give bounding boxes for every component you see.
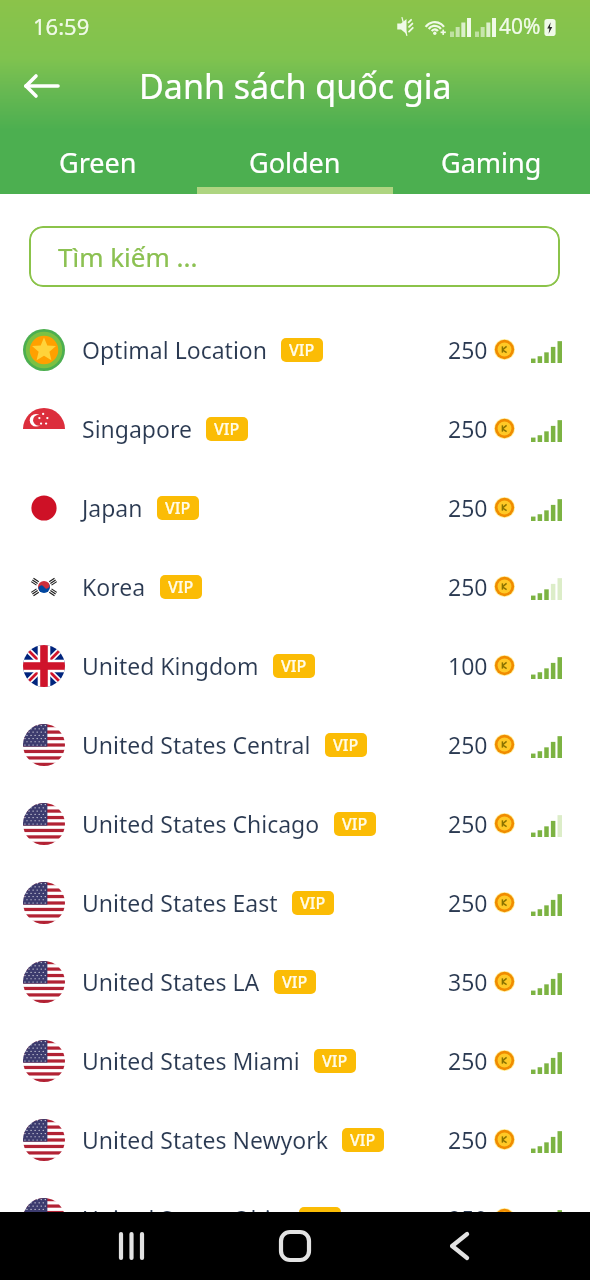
button[interactable]: Korea: [0, 547, 590, 626]
staticText: 250: [448, 1045, 488, 1076]
staticText: VIP: [282, 971, 308, 993]
staticText: 250: [448, 808, 488, 839]
staticText: Optimal Location: [82, 334, 267, 365]
staticText: Danh sách quốc gia: [139, 63, 452, 109]
staticText: 250: [448, 334, 488, 365]
staticText: VIP: [165, 497, 191, 519]
button[interactable]: United States East: [0, 863, 590, 942]
button[interactable]: Golden: [196, 130, 393, 194]
button[interactable]: Recent apps: [107, 1222, 155, 1270]
button[interactable]: Back: [18, 62, 66, 110]
staticText: VIP: [333, 734, 359, 756]
staticText: United States Miami: [82, 1045, 300, 1076]
button[interactable]: Gaming: [393, 130, 590, 194]
button[interactable]: Green: [0, 130, 196, 194]
staticText: United States Chicago: [82, 808, 320, 839]
staticText: 250: [448, 1124, 488, 1155]
staticText: VIP: [214, 418, 240, 440]
staticText: Green: [59, 144, 137, 181]
staticText: 250: [448, 571, 488, 602]
staticText: 40%: [499, 12, 541, 41]
staticText: Gaming: [441, 144, 542, 181]
staticText: 250: [448, 887, 488, 918]
staticText: Golden: [249, 144, 341, 181]
staticText: VIP: [281, 655, 307, 677]
staticText: 250: [448, 729, 488, 760]
button[interactable]: Optimal Location: [0, 310, 590, 389]
staticText: Korea: [82, 571, 146, 602]
staticText: VIP: [300, 892, 326, 914]
staticText: Singapore: [82, 413, 192, 444]
staticText: 250: [448, 492, 488, 523]
button[interactable]: United Kingdom: [0, 626, 590, 705]
button[interactable]: United States Newyork: [0, 1100, 590, 1179]
staticText: Japan: [82, 492, 143, 523]
button[interactable]: Japan: [0, 468, 590, 547]
staticText: United States Ohio: [82, 1203, 285, 1212]
button[interactable]: United States Central: [0, 705, 590, 784]
button[interactable]: Home: [271, 1222, 319, 1270]
staticText: United States East: [82, 887, 278, 918]
staticText: United States LA: [82, 966, 260, 997]
staticText: 350: [448, 966, 488, 997]
staticText: VIP: [289, 339, 315, 361]
staticText: United States Newyork: [82, 1124, 328, 1155]
staticText: 100: [448, 650, 488, 681]
button[interactable]: United States LA: [0, 942, 590, 1021]
staticText: VIP: [168, 576, 194, 598]
staticText: VIP: [350, 1129, 376, 1151]
staticText: United Kingdom: [82, 650, 259, 681]
staticText: VIP: [342, 813, 368, 835]
button[interactable]: Singapore: [0, 389, 590, 468]
button[interactable]: Tìm kiếm ...: [29, 226, 560, 287]
button[interactable]: United States Miami: [0, 1021, 590, 1100]
staticText: 250: [448, 1203, 488, 1212]
staticText: 16:59: [33, 11, 90, 41]
button[interactable]: Back: [435, 1222, 483, 1270]
button[interactable]: United States Ohio: [0, 1179, 590, 1212]
staticText: United States Central: [82, 729, 311, 760]
staticText: Tìm kiếm ...: [58, 239, 198, 274]
button[interactable]: United States Chicago: [0, 784, 590, 863]
staticText: 250: [448, 413, 488, 444]
staticText: VIP: [322, 1050, 348, 1072]
